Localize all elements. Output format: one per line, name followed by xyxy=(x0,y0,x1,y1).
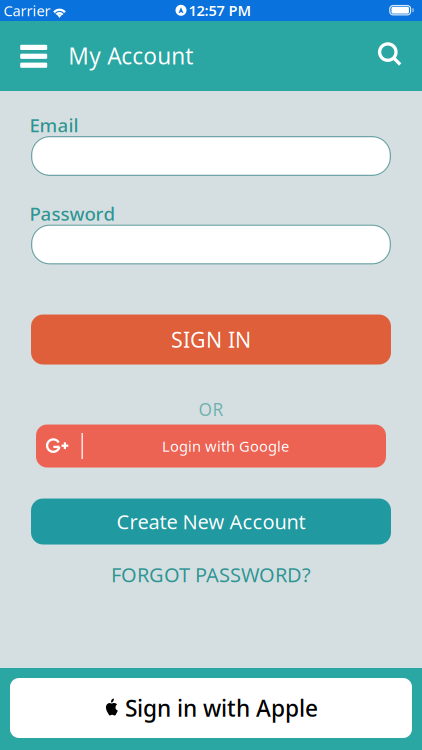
staticText: Login with Google xyxy=(162,436,289,456)
button[interactable]: SIGN IN xyxy=(31,314,391,364)
staticText: Create New Account xyxy=(116,508,305,535)
staticText: Sign in with Apple xyxy=(125,693,318,723)
button[interactable]: Create New Account xyxy=(31,498,391,544)
button[interactable]: FORGOT PASSWORD? xyxy=(91,558,331,590)
staticText: OR xyxy=(198,398,223,421)
staticText: Password xyxy=(29,201,115,226)
button[interactable]: Search xyxy=(365,26,415,82)
staticText: My Account xyxy=(68,41,193,71)
staticText: Email xyxy=(29,113,78,137)
button[interactable]: Menu xyxy=(4,24,64,88)
button[interactable]: Login with Google xyxy=(36,424,386,467)
staticText: SIGN IN xyxy=(171,325,251,354)
staticText: 12:57 PM xyxy=(188,1,251,20)
button[interactable]: Sign in with Apple xyxy=(10,678,412,738)
staticText: FORGOT PASSWORD? xyxy=(111,561,311,588)
staticText: Carrier xyxy=(3,1,50,20)
